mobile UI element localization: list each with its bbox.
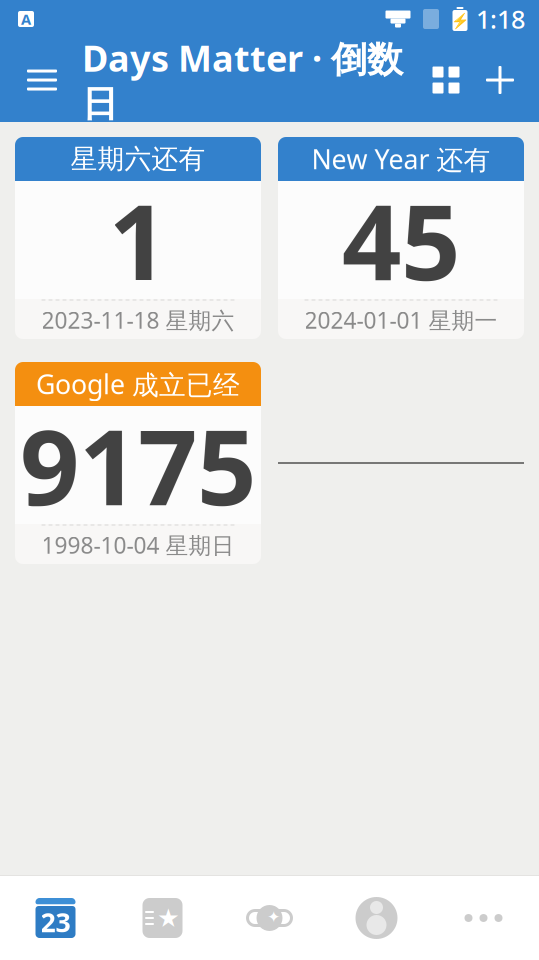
staticText: A xyxy=(21,9,31,29)
staticText: Google 成立已经 xyxy=(36,366,240,402)
staticText: 1 xyxy=(108,171,167,309)
staticText: 2023-11-18 星期六 xyxy=(41,305,234,335)
button[interactable]: Add event xyxy=(473,53,527,107)
button[interactable]: Discover xyxy=(216,876,323,960)
button[interactable]: Menu xyxy=(16,54,68,106)
staticText: ✦ xyxy=(267,908,280,926)
staticText: ★ xyxy=(157,904,180,932)
button[interactable]: Change layout xyxy=(419,53,473,107)
staticText: Days Matter · 倒数日 xyxy=(82,34,403,126)
button[interactable]: New Year 还有 xyxy=(278,137,524,339)
staticText: 1:18 xyxy=(476,2,525,36)
staticText: 9175 xyxy=(20,396,256,534)
staticText: 23 xyxy=(40,904,70,940)
button[interactable]: More xyxy=(430,876,537,960)
button[interactable]: Google 成立已经 xyxy=(15,362,261,564)
button[interactable]: Collections xyxy=(109,876,216,960)
button[interactable]: 星期六还有 xyxy=(15,137,261,339)
staticText: 1998-10-04 星期日 xyxy=(41,530,234,560)
button[interactable]: Profile xyxy=(323,876,430,960)
button[interactable]: Days Matter · 倒数日 xyxy=(68,34,403,126)
button[interactable]: Countdowns xyxy=(2,876,109,960)
staticText: 45 xyxy=(342,171,460,309)
staticText: 2024-01-01 星期一 xyxy=(304,305,497,335)
staticText: ⚡ xyxy=(451,12,469,29)
staticText: 星期六还有 xyxy=(70,143,205,175)
staticText: New Year 还有 xyxy=(311,141,490,177)
